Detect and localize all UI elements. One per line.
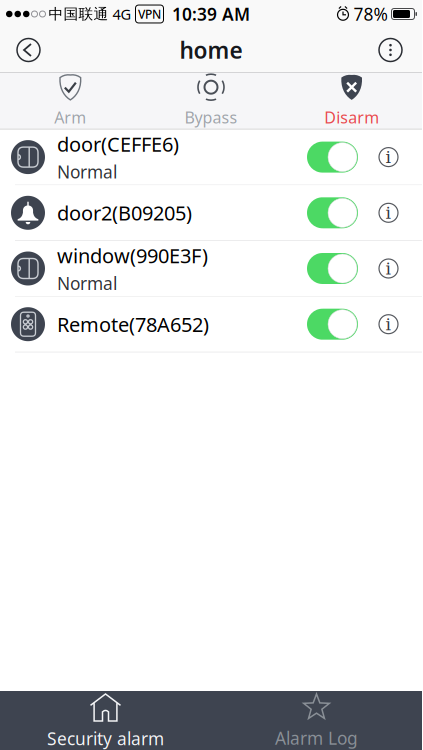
button[interactable]: Security alarm (0, 694, 211, 750)
staticText: Bypass (184, 107, 237, 128)
button[interactable]: window(990E3F) (0, 241, 422, 296)
staticText: Arm (54, 107, 86, 128)
button[interactable]: Back (0, 38, 40, 61)
button[interactable]: Enabled (307, 142, 358, 173)
staticText: Disarm (324, 107, 379, 128)
button[interactable]: door2(B09205) (0, 185, 422, 240)
button[interactable]: Enabled (307, 253, 358, 284)
staticText: 4G (112, 4, 131, 24)
staticText: door2(B09205) (57, 199, 192, 226)
button[interactable]: Disarm (281, 66, 422, 136)
button[interactable]: Details (379, 203, 398, 222)
staticText: 78% (353, 2, 387, 25)
staticText: VPN (138, 6, 161, 22)
staticText: Normal (57, 160, 117, 183)
button[interactable]: Details (379, 148, 398, 167)
staticText: i (385, 314, 391, 334)
staticText: home (179, 35, 242, 65)
button[interactable]: Alarm Log (211, 694, 422, 749)
staticText: i (385, 258, 391, 279)
staticText: Security alarm (47, 727, 164, 750)
staticText: Remote(78A652) (57, 311, 209, 337)
staticText: window(990E3F) (57, 242, 208, 269)
staticText: 10:39 AM (172, 2, 250, 25)
button[interactable]: door(CEFFE6) (0, 130, 422, 185)
button[interactable]: Arm (0, 66, 141, 136)
button[interactable]: Enabled (307, 197, 358, 228)
staticText: door(CEFFE6) (57, 131, 179, 157)
staticText: i (385, 147, 391, 167)
staticText: 中国联通 (48, 5, 108, 23)
button[interactable]: Bypass (141, 66, 281, 136)
staticText: i (385, 203, 391, 223)
button[interactable]: More (379, 38, 422, 61)
button[interactable]: Enabled (307, 309, 358, 340)
button[interactable]: Remote(78A652) (0, 297, 422, 352)
button[interactable]: Details (379, 315, 398, 334)
button[interactable]: Details (379, 259, 398, 278)
staticText: Alarm Log (275, 726, 358, 749)
staticText: Normal (57, 272, 117, 295)
